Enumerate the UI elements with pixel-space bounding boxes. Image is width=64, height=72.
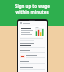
staticText: Sign up to wage bbox=[15, 3, 50, 9]
button[interactable] bbox=[20, 43, 45, 48]
button[interactable] bbox=[20, 26, 45, 37]
staticText: within minutes bbox=[15, 9, 49, 15]
button[interactable] bbox=[20, 50, 45, 53]
button[interactable] bbox=[20, 61, 45, 64]
button[interactable] bbox=[20, 55, 25, 58]
button[interactable] bbox=[20, 67, 45, 70]
